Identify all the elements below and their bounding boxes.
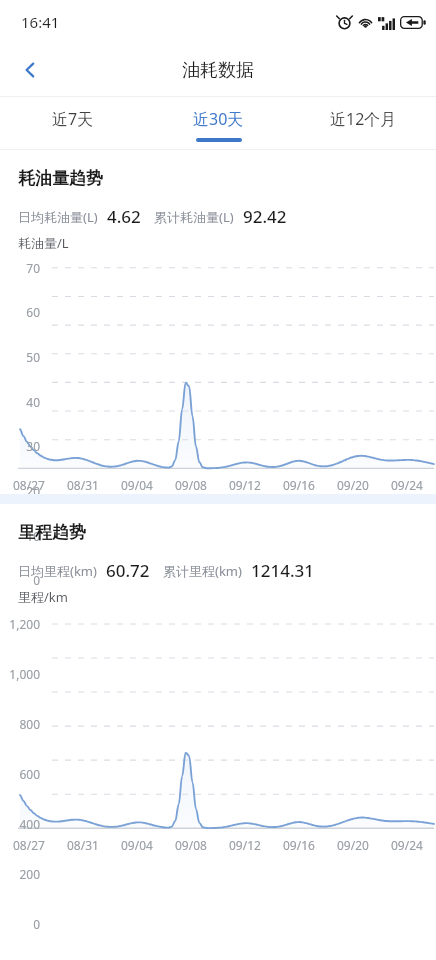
staticText: 09/20: [337, 837, 369, 853]
staticText: 08/31: [67, 837, 99, 853]
staticText: 1214.31: [251, 559, 314, 582]
staticText: 0: [0, 572, 40, 588]
staticText: 50: [0, 349, 40, 365]
staticText: 600: [0, 766, 40, 782]
staticText: 09/04: [121, 477, 153, 493]
staticText: 1,000: [0, 666, 40, 682]
staticText: 10: [0, 528, 40, 544]
staticText: 200: [0, 866, 40, 882]
staticText: 16:41: [21, 12, 60, 32]
staticText: 累计里程(km): [163, 562, 242, 580]
staticText: 0: [0, 916, 40, 932]
staticText: 09/24: [391, 477, 423, 493]
staticText: 60.72: [106, 559, 150, 582]
staticText: 08/27: [13, 477, 45, 493]
staticText: 40: [0, 394, 40, 410]
staticText: 400: [0, 816, 40, 832]
staticText: 30: [0, 438, 40, 454]
staticText: 20: [0, 483, 40, 499]
staticText: 耗油量趋势: [18, 168, 103, 189]
staticText: 油耗数据: [182, 59, 254, 82]
staticText: 60: [0, 304, 40, 320]
staticText: 70: [0, 260, 40, 276]
staticText: 800: [0, 716, 40, 732]
staticText: 09/20: [337, 477, 369, 493]
staticText: 1,200: [0, 616, 40, 632]
staticText: 累计耗油量(L): [154, 208, 234, 226]
staticText: 92.42: [243, 205, 287, 228]
staticText: 近12个月: [330, 108, 397, 130]
staticText: 近7天: [52, 108, 94, 130]
staticText: 09/16: [283, 477, 315, 493]
button[interactable]: 近7天: [0, 97, 146, 149]
staticText: 09/12: [229, 477, 261, 493]
staticText: 里程趋势: [18, 522, 86, 543]
button[interactable]: 近30天: [146, 97, 291, 149]
staticText: 4.62: [107, 205, 141, 228]
staticText: 09/24: [391, 837, 423, 853]
button[interactable]: 近12个月: [291, 97, 436, 149]
staticText: 09/16: [283, 837, 315, 853]
staticText: 08/31: [67, 477, 99, 493]
staticText: 近30天: [193, 108, 244, 130]
staticText: 09/04: [121, 837, 153, 853]
staticText: 日均里程(km): [18, 562, 97, 580]
staticText: 09/08: [175, 477, 207, 493]
staticText: 09/08: [175, 837, 207, 853]
staticText: 08/27: [13, 837, 45, 853]
staticText: 耗油量/L: [18, 234, 69, 252]
button[interactable]: Back: [8, 48, 52, 92]
staticText: 里程/km: [18, 588, 68, 606]
staticText: 09/12: [229, 837, 261, 853]
staticText: 日均耗油量(L): [18, 208, 98, 226]
